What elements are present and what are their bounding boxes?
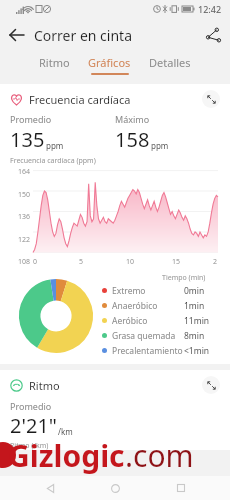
staticText: Gráficos: [88, 55, 131, 70]
staticText: 150: [17, 190, 30, 200]
button[interactable]: Back: [0, 18, 34, 52]
button[interactable]: Expand chart: [202, 90, 220, 108]
button[interactable]: Ritmo: [37, 55, 72, 75]
staticText: Promedio: [10, 113, 52, 125]
staticText: Ritmo: [29, 378, 60, 393]
staticText: Promedio: [10, 400, 52, 412]
staticText: Grasa quemada: [112, 330, 176, 342]
button[interactable]: Recent apps: [165, 476, 197, 500]
staticText: 164: [17, 167, 30, 177]
staticText: Precalentamiento: [112, 345, 183, 357]
staticText: 0: [33, 257, 38, 267]
staticText: Frecuencia cardíaca: [29, 92, 131, 107]
button[interactable]: Home: [99, 476, 131, 500]
staticText: Ritmo: [39, 55, 70, 70]
staticText: ppm: [151, 140, 169, 151]
button[interactable]: Gráficos: [86, 55, 133, 75]
staticText: Aeróbico: [112, 315, 148, 327]
button[interactable]: Expand pace chart: [202, 376, 220, 394]
button[interactable]: Back: [34, 476, 66, 500]
staticText: .com: [125, 435, 194, 475]
staticText: Máximo: [115, 113, 150, 125]
staticText: 108: [17, 257, 30, 267]
staticText: 1min: [184, 300, 205, 312]
staticText: 8min: [184, 330, 205, 342]
staticText: 12:42: [198, 3, 222, 15]
button[interactable]: Detalles: [147, 55, 193, 75]
staticText: Gizlogic: [8, 435, 125, 475]
staticText: 2'21": [10, 412, 57, 439]
staticText: /km: [58, 426, 73, 437]
staticText: Detalles: [149, 55, 191, 70]
staticText: 0min: [184, 285, 205, 297]
staticText: 20: [213, 257, 218, 267]
staticText: 158: [115, 126, 150, 153]
staticText: 15: [172, 257, 181, 267]
staticText: Ritmo (/km): [10, 441, 49, 450]
staticText: Tiempo (min): [162, 273, 206, 283]
staticText: 122: [17, 235, 30, 245]
staticText: Anaeróbico: [112, 300, 158, 312]
staticText: Correr en cinta: [34, 26, 132, 45]
staticText: Extremo: [112, 285, 146, 297]
staticText: 11min: [184, 315, 210, 327]
staticText: 5: [79, 257, 84, 267]
button[interactable]: Share: [196, 18, 230, 52]
staticText: ppm: [46, 140, 64, 151]
staticText: Frecuencia cardíaca (ppm): [10, 156, 96, 166]
staticText: <1min: [184, 345, 210, 357]
staticText: 135: [10, 126, 45, 153]
staticText: 136: [17, 212, 30, 222]
staticText: 10: [126, 257, 135, 267]
